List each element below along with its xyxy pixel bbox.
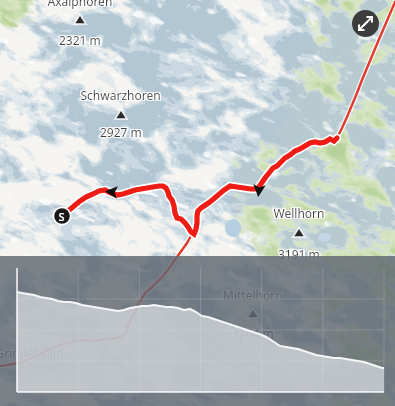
button[interactable]: Fullscreen <box>352 10 379 37</box>
